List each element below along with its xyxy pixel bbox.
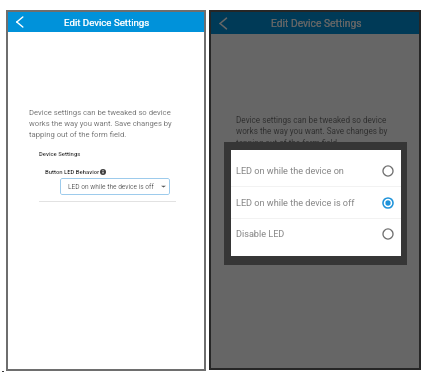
button[interactable]: LED on while the device is off xyxy=(231,187,401,219)
staticText: Disable LED xyxy=(236,229,382,240)
button[interactable]: LED on while the device is off xyxy=(60,178,170,195)
button[interactable]: Disable LED xyxy=(231,218,401,250)
staticText: Device settings can be tweaked so device… xyxy=(29,108,172,139)
button[interactable]: LED on while the device on xyxy=(231,155,401,187)
button[interactable]: Back xyxy=(13,15,27,29)
button[interactable]: More information xyxy=(100,169,106,175)
staticText: LED on while the device is off xyxy=(68,183,154,191)
staticText: LED on while the device is off xyxy=(236,198,382,209)
staticText: Edit Device Settings xyxy=(271,17,362,29)
staticText: Device Settings xyxy=(39,151,81,158)
staticText: LED on while the device is off xyxy=(274,193,365,201)
staticText: Button LED Behavior xyxy=(45,169,100,176)
staticText: Edit Device Settings xyxy=(64,17,150,28)
button[interactable]: Back xyxy=(216,16,231,31)
button[interactable]: LED on while the device is off xyxy=(266,188,383,206)
staticText: LED on while the device on xyxy=(236,166,382,177)
staticText: Device settings can be tweaked so device… xyxy=(236,115,388,148)
